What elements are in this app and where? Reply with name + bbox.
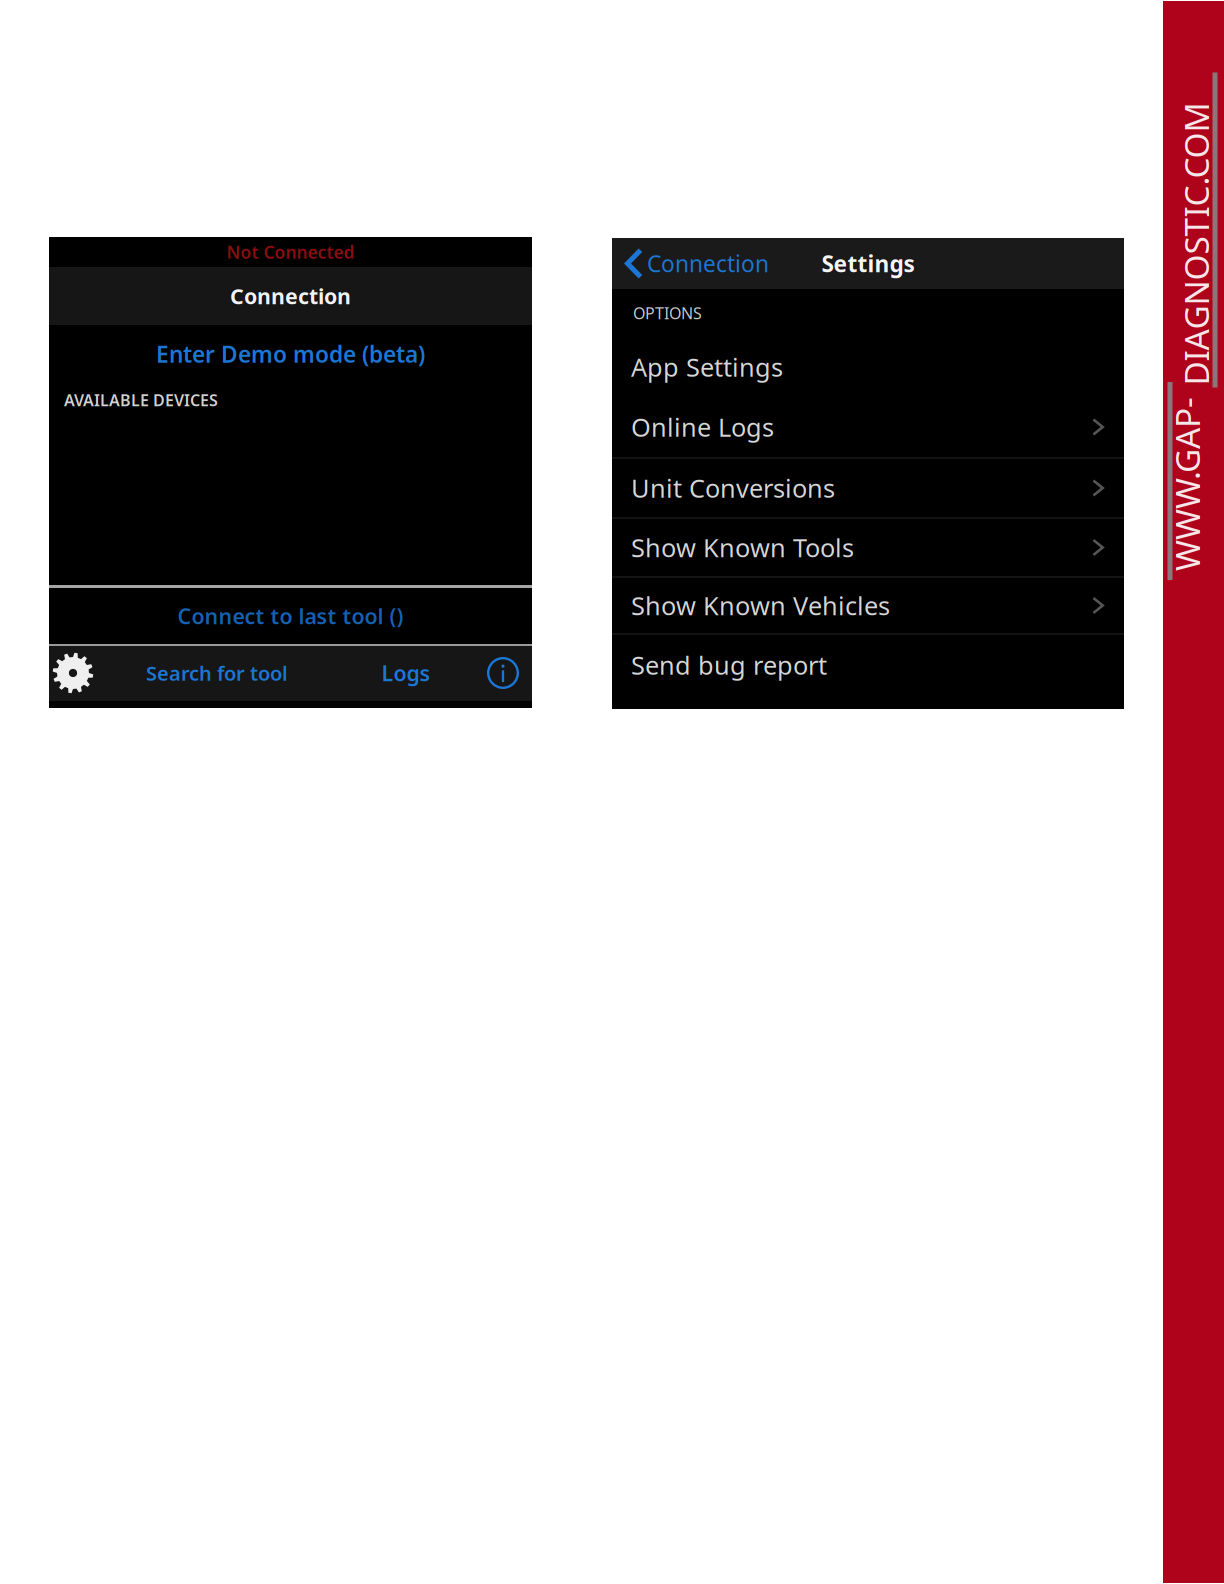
staticText: OPTIONS [633,302,702,324]
staticText: Enter Demo mode (beta) [156,339,425,369]
button[interactable]: Logs [361,645,451,700]
staticText: Settings [821,248,914,278]
staticText: Logs [381,659,430,687]
staticText: DIAGNOSTIC.COM [1054,222,1224,266]
staticText: App Settings [631,350,783,384]
staticText: Send bug report [631,648,827,682]
button[interactable]: Show Known Tools [612,519,1124,576]
button[interactable]: Info [478,645,528,700]
staticText: Search for tool [146,660,288,686]
button[interactable]: App Settings [612,337,1124,397]
staticText: Connection [647,248,769,278]
button[interactable]: Show Known Vehicles [612,578,1124,633]
button[interactable]: Unit Conversions [612,459,1124,517]
staticText: Show Known Vehicles [631,589,890,622]
button[interactable]: Search for tool [127,645,307,700]
button[interactable]: Enter Demo mode (beta) [49,325,532,383]
button[interactable]: Send bug report [612,635,1124,695]
button[interactable]: Online Logs [612,397,1124,457]
staticText: AVAILABLE DEVICES [64,389,218,411]
staticText: WWW.GAP- [1100,462,1224,506]
staticText: Unit Conversions [631,471,835,505]
button[interactable]: Connection [612,238,769,289]
staticText: Not Connected [226,240,354,263]
staticText: Show Known Tools [631,531,854,564]
staticText: Online Logs [631,410,774,444]
staticText: Connection [230,282,351,310]
staticText: Connect to last tool () [177,602,403,630]
button[interactable]: Connect to last tool () [49,588,532,644]
button[interactable]: Settings [45,645,101,700]
